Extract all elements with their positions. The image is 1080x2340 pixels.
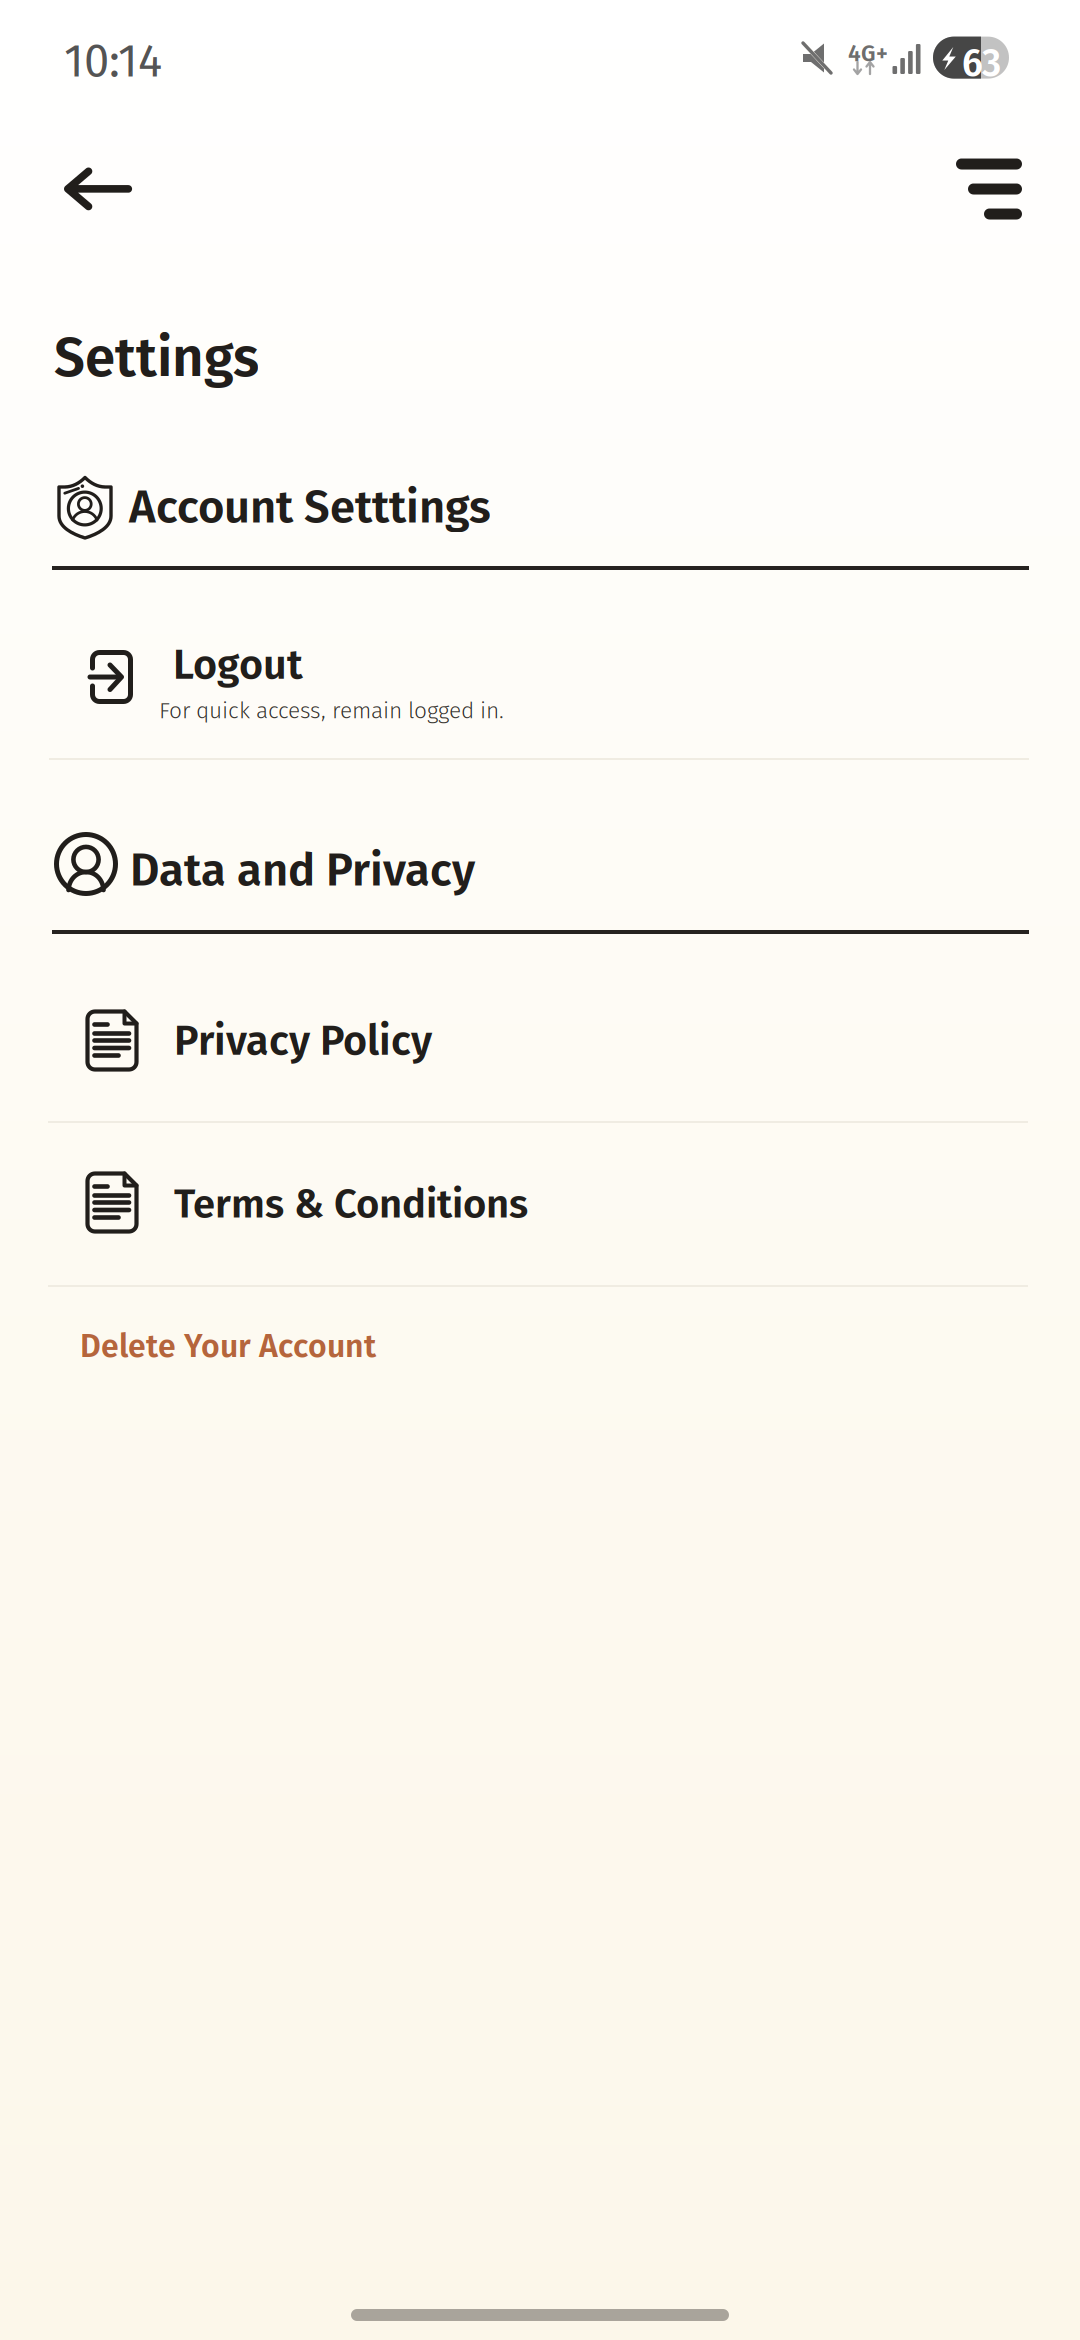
button[interactable]: Privacy Policy: [0, 934, 1080, 1122]
button[interactable]: Logout: [0, 570, 1080, 759]
staticText: 10:14: [64, 34, 162, 88]
staticText: Terms & Conditions: [174, 1180, 528, 1228]
staticText: Data and Privacy: [130, 843, 475, 897]
button[interactable]: Delete Your Account: [0, 1287, 1080, 1407]
staticText: Delete Your Account: [80, 1327, 376, 1365]
staticText: Privacy Policy: [174, 1016, 432, 1066]
staticText: 4G+: [848, 40, 888, 67]
staticText: Logout: [173, 640, 303, 690]
staticText: Settings: [54, 325, 259, 391]
staticText: For quick access, remain logged in.: [159, 697, 504, 724]
button[interactable]: Terms & Conditions: [0, 1123, 1080, 1286]
button[interactable]: Menu: [924, 137, 1054, 241]
staticText: Account Setttings: [129, 480, 491, 534]
button[interactable]: Back: [33, 137, 163, 241]
staticText: 63: [962, 41, 1001, 86]
